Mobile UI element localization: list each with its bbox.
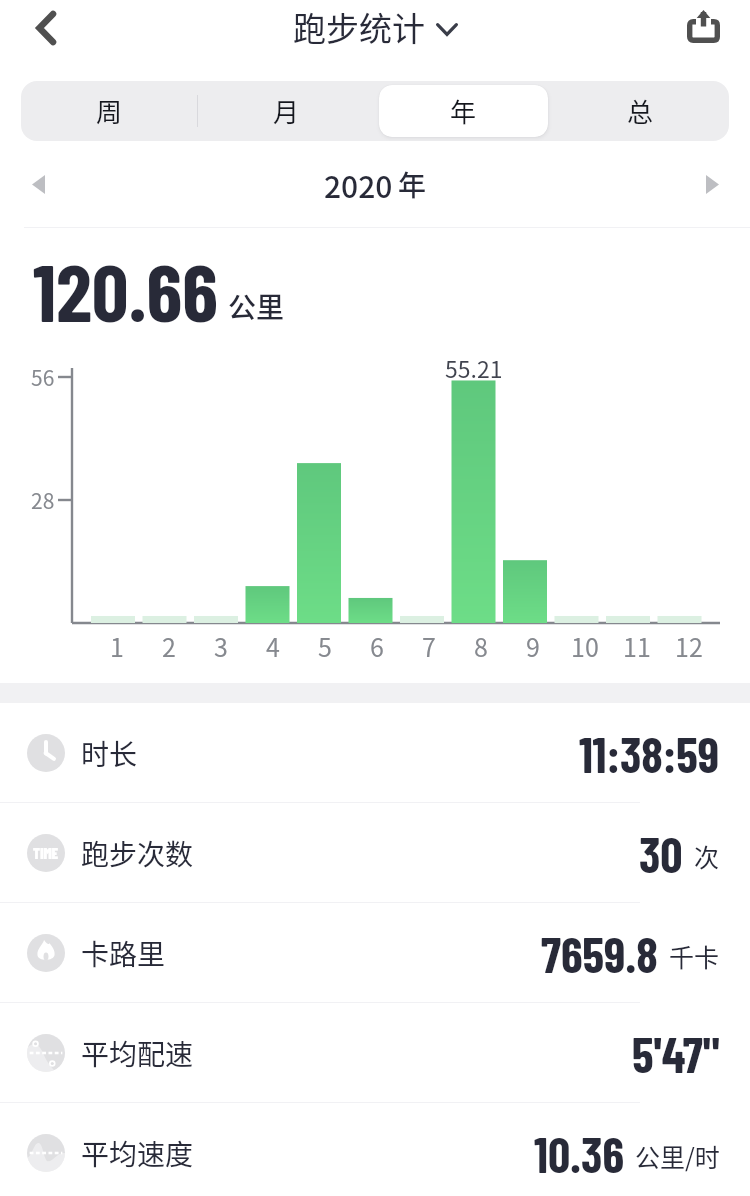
button[interactable]: 平均速度: [0, 1103, 750, 1196]
button[interactable]: 卡路里: [0, 903, 750, 1003]
button[interactable]: 平均配速: [0, 1003, 750, 1103]
staticText: 时长: [81, 733, 138, 774]
staticText: 6: [370, 628, 384, 664]
staticText: 5: [318, 628, 332, 664]
staticText: 11: [623, 628, 651, 664]
button[interactable]: 总: [556, 85, 725, 137]
staticText: 跑步次数: [81, 833, 194, 874]
staticText: 8: [474, 628, 488, 664]
staticText: 周: [96, 92, 123, 130]
button[interactable]: Share: [671, 0, 735, 54]
staticText: 4: [266, 628, 280, 664]
staticText: 9: [526, 628, 540, 664]
staticText: 平均配速: [81, 1033, 194, 1074]
staticText: 7659.8: [541, 924, 658, 983]
staticText: 10: [571, 628, 599, 664]
staticText: 总: [627, 92, 654, 130]
staticText: 月: [273, 92, 300, 130]
staticText: 1: [110, 628, 124, 664]
staticText: 跑步统计: [293, 3, 425, 51]
button[interactable]: 跑步统计: [293, 3, 458, 51]
button[interactable]: Previous year: [3, 141, 73, 227]
staticText: 5'47": [632, 1024, 720, 1083]
staticText: 56: [31, 362, 55, 392]
staticText: 公里: [228, 286, 285, 327]
staticText: 10.36: [534, 1124, 624, 1183]
staticText: 次: [694, 838, 720, 874]
button[interactable]: 时长: [0, 703, 750, 803]
button[interactable]: 周: [25, 85, 194, 137]
staticText: 30: [639, 824, 683, 883]
staticText: 公里/时: [635, 1138, 720, 1174]
staticText: 7: [422, 628, 436, 664]
staticText: 28: [31, 485, 55, 515]
staticText: 年: [450, 92, 477, 130]
button[interactable]: 年: [379, 85, 548, 137]
staticText: 2020: [324, 163, 393, 206]
button[interactable]: Next year: [677, 141, 747, 227]
button[interactable]: Back: [14, 0, 78, 55]
staticText: 2: [162, 628, 176, 664]
staticText: 11:38:59: [579, 724, 720, 783]
button[interactable]: TIME: [0, 803, 750, 903]
staticText: 3: [214, 628, 228, 664]
staticText: 年: [398, 164, 427, 205]
staticText: 55.21: [445, 351, 503, 384]
staticText: TIME: [33, 845, 59, 862]
staticText: 平均速度: [81, 1133, 194, 1174]
staticText: 120.66: [33, 241, 218, 338]
staticText: 千卡: [669, 938, 720, 974]
button[interactable]: 月: [202, 85, 371, 137]
staticText: 12: [675, 628, 703, 664]
staticText: 卡路里: [81, 933, 166, 974]
